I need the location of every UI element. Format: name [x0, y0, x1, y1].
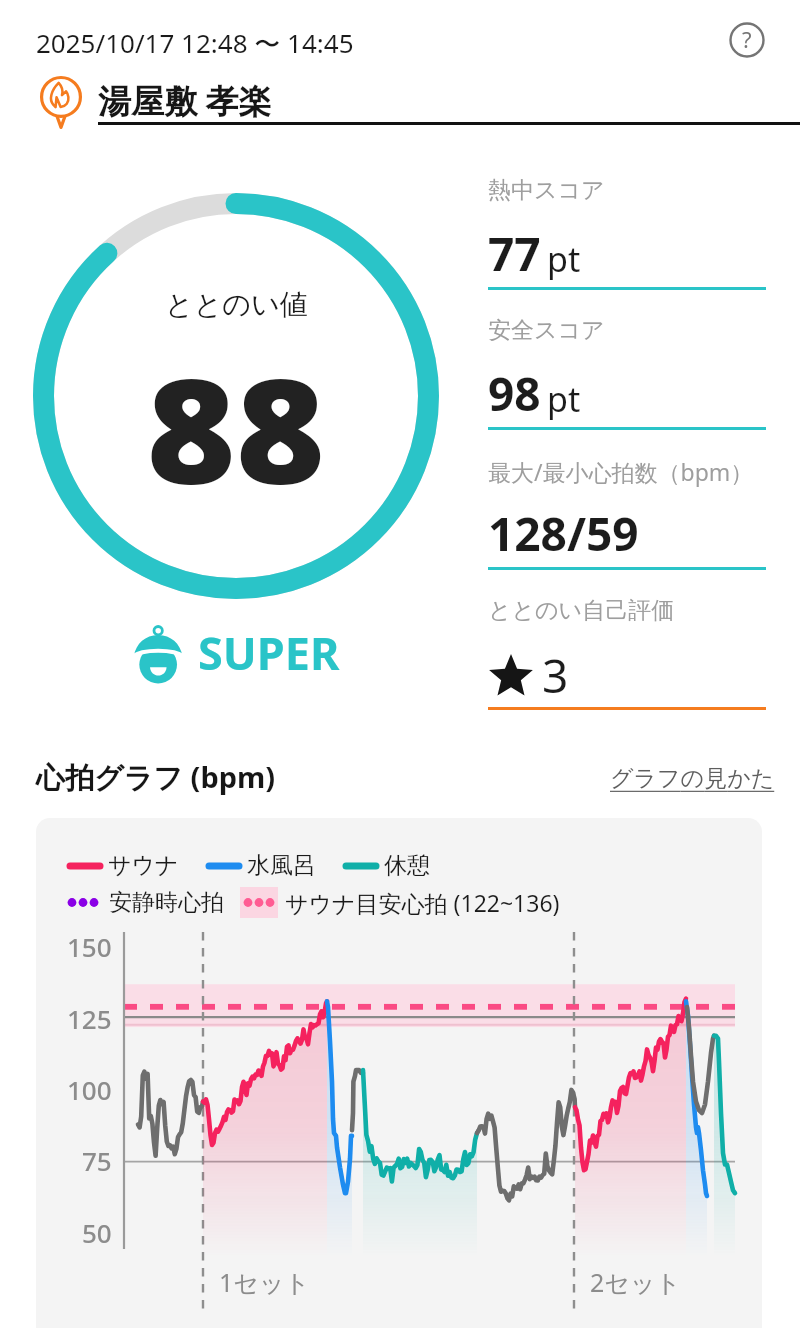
- staticText: 125: [67, 1001, 112, 1036]
- button[interactable]: Help: [726, 19, 768, 61]
- staticText: サウナ目安心拍 (122~136): [285, 887, 560, 918]
- staticText: 安全スコア: [488, 316, 605, 345]
- button[interactable]: 湯屋敷 孝楽: [32, 72, 800, 130]
- staticText: SUPER: [198, 622, 340, 683]
- staticText: 98: [488, 362, 541, 425]
- staticText: 128/59: [488, 502, 639, 565]
- staticText: 心拍グラフ (bpm): [36, 757, 276, 797]
- button[interactable]: グラフの見かた: [610, 764, 775, 793]
- staticText: 100: [67, 1072, 112, 1107]
- staticText: ととのい値: [165, 287, 308, 322]
- staticText: 休憩: [384, 851, 430, 880]
- staticText: 安静時心拍: [109, 888, 224, 917]
- staticText: 水風呂: [247, 851, 316, 880]
- staticText: 湯屋敷 孝楽: [98, 78, 272, 123]
- staticText: 150: [67, 929, 112, 964]
- staticText: 熱中スコア: [488, 176, 605, 205]
- staticText: pt: [547, 376, 581, 422]
- staticText: ととのい自己評価: [488, 596, 675, 625]
- staticText: pt: [547, 236, 581, 282]
- staticText: 75: [82, 1143, 112, 1178]
- staticText: 50: [82, 1215, 112, 1250]
- staticText: 3: [542, 644, 569, 707]
- staticText: 88: [146, 330, 326, 527]
- staticText: 1セット: [219, 1265, 311, 1299]
- staticText: ?: [742, 24, 752, 54]
- staticText: 77: [488, 222, 541, 285]
- staticText: サウナ: [108, 851, 179, 880]
- staticText: 最大/最小心拍数（bpm）: [488, 456, 754, 487]
- staticText: 2セット: [590, 1265, 682, 1299]
- staticText: 2025/10/17 12:48 〜 14:45: [36, 25, 354, 61]
